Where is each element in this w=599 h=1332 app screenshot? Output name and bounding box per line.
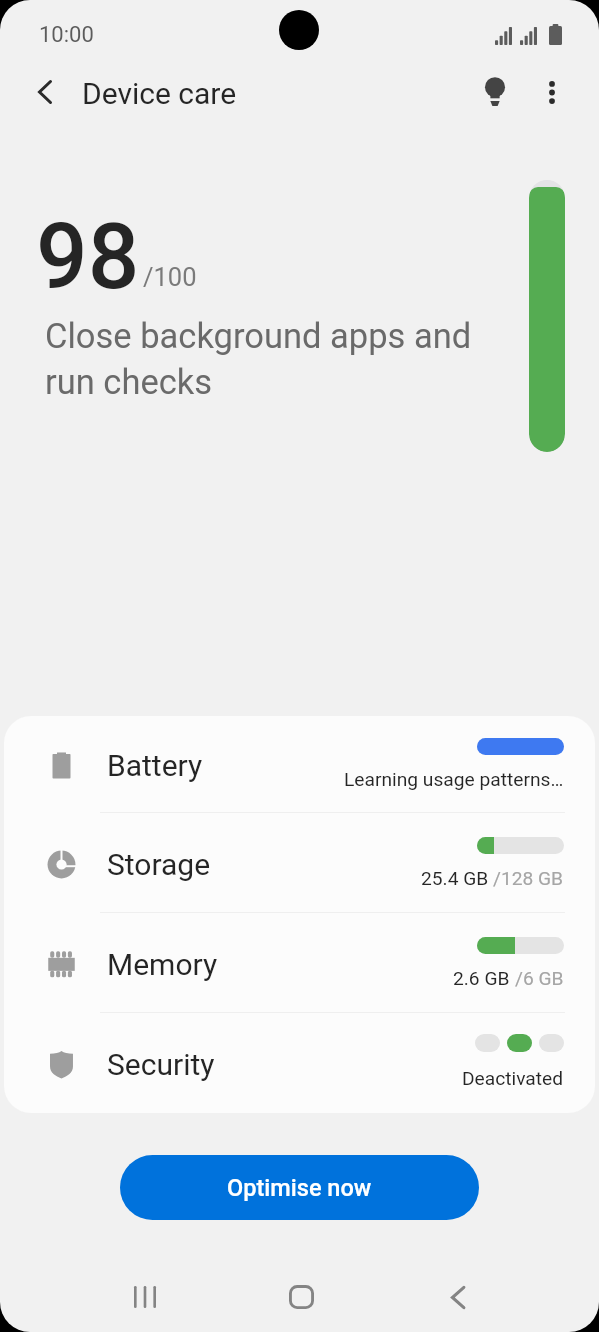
- staticText: 10:00: [39, 22, 94, 48]
- staticText: 25.4 GB: [421, 867, 493, 890]
- staticText: /128 GB: [493, 867, 564, 890]
- staticText: /6 GB: [515, 967, 564, 990]
- staticText: Deactivated: [462, 1067, 564, 1090]
- button[interactable]: Battery: [4, 716, 595, 813]
- staticText: /100: [143, 262, 197, 292]
- staticText: 98: [36, 204, 140, 311]
- button[interactable]: Recent apps: [110, 1262, 180, 1332]
- button[interactable]: Memory: [4, 913, 595, 1013]
- button[interactable]: More options: [528, 68, 576, 116]
- staticText: 2.6 GB: [453, 967, 515, 990]
- button[interactable]: Optimise now: [120, 1155, 479, 1220]
- button[interactable]: Back: [423, 1262, 493, 1332]
- button[interactable]: Security: [4, 1013, 595, 1113]
- staticText: Close background apps and run checks: [45, 316, 472, 403]
- staticText: Security: [107, 1047, 215, 1082]
- staticText: Device care: [82, 76, 237, 111]
- staticText: Memory: [107, 947, 218, 982]
- staticText: Storage: [107, 847, 211, 882]
- button[interactable]: Navigate up: [21, 68, 69, 116]
- staticText: Optimise now: [227, 1174, 372, 1202]
- button[interactable]: Home: [266, 1262, 336, 1332]
- button[interactable]: Storage: [4, 813, 595, 913]
- staticText: Learning usage patterns…: [344, 768, 564, 791]
- button[interactable]: Tips: [471, 68, 519, 116]
- staticText: Battery: [107, 748, 203, 783]
